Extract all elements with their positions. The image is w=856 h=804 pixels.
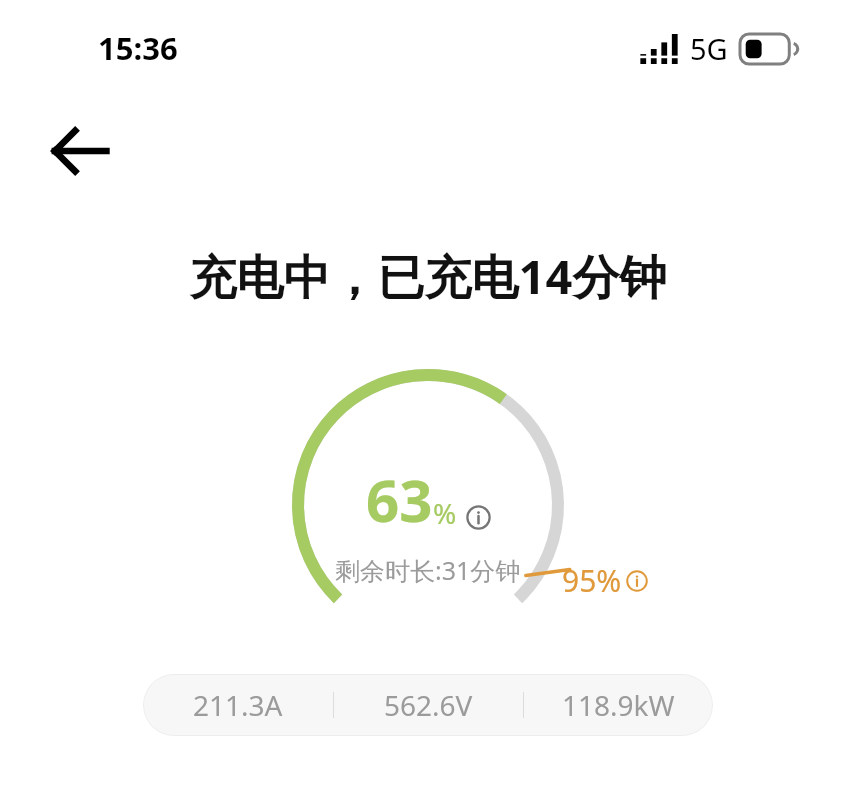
staticText: 211.3A bbox=[193, 686, 283, 724]
staticText: 5G bbox=[690, 29, 728, 68]
staticText: 充电中，已充电14分钟 bbox=[0, 244, 856, 308]
button[interactable]: Back bbox=[44, 112, 122, 190]
staticText: 118.9kW bbox=[562, 686, 675, 724]
staticText: 剩余时长:31分钟 bbox=[335, 553, 521, 587]
button[interactable]: 211.3A bbox=[143, 674, 713, 736]
staticText: 63 bbox=[366, 460, 433, 539]
staticText: 562.6V bbox=[384, 686, 473, 724]
staticText: 15:36 bbox=[98, 27, 178, 69]
button[interactable]: Battery level info bbox=[466, 505, 491, 530]
staticText: 95% bbox=[562, 560, 622, 601]
staticText: % bbox=[433, 494, 457, 532]
button[interactable]: 95% bbox=[562, 560, 648, 601]
